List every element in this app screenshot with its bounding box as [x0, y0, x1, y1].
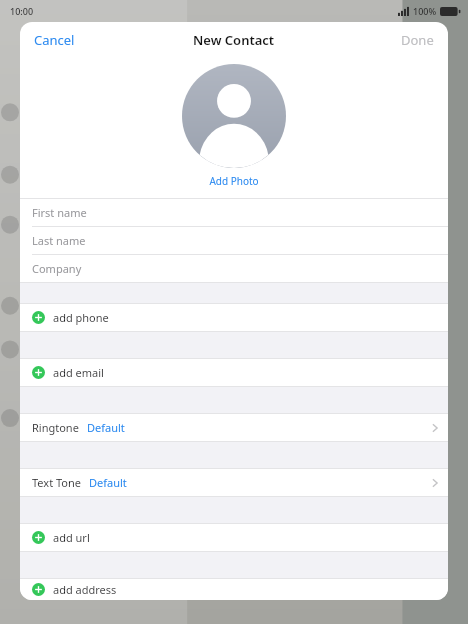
staticText: add address — [53, 582, 117, 597]
staticText: First name — [32, 205, 87, 220]
staticText: add url — [53, 530, 90, 545]
button[interactable]: add address — [20, 579, 448, 600]
staticText: add email — [53, 365, 104, 380]
button[interactable]: Text Tone — [20, 469, 448, 496]
button[interactable]: Done — [387, 25, 448, 55]
staticText: Ringtone — [32, 420, 79, 435]
button[interactable]: add email — [20, 359, 448, 386]
other: Open Ringtone — [432, 423, 438, 433]
staticText: Last name — [32, 233, 86, 248]
staticText: Company — [32, 261, 82, 276]
staticText: Done — [401, 31, 434, 49]
staticText: 10:00 — [10, 5, 34, 17]
button[interactable]: Company — [20, 255, 448, 282]
staticText: New Contact — [193, 31, 275, 49]
staticText: Default — [89, 475, 127, 490]
staticText: add phone — [53, 310, 109, 325]
button[interactable]: add url — [20, 524, 448, 551]
staticText: Default — [87, 420, 125, 435]
staticText: 100% — [413, 5, 437, 17]
button[interactable]: Add Photo — [199, 172, 269, 190]
button[interactable]: Ringtone — [20, 414, 448, 441]
button[interactable]: Last name — [20, 227, 448, 254]
button[interactable]: add phone — [20, 304, 448, 331]
staticText: Add Photo — [209, 174, 259, 188]
button[interactable]: Cancel — [20, 25, 89, 55]
staticText: Cancel — [34, 31, 75, 49]
staticText: Text Tone — [32, 475, 81, 490]
button[interactable]: First name — [20, 199, 448, 226]
other: Open Text Tone — [432, 478, 438, 488]
